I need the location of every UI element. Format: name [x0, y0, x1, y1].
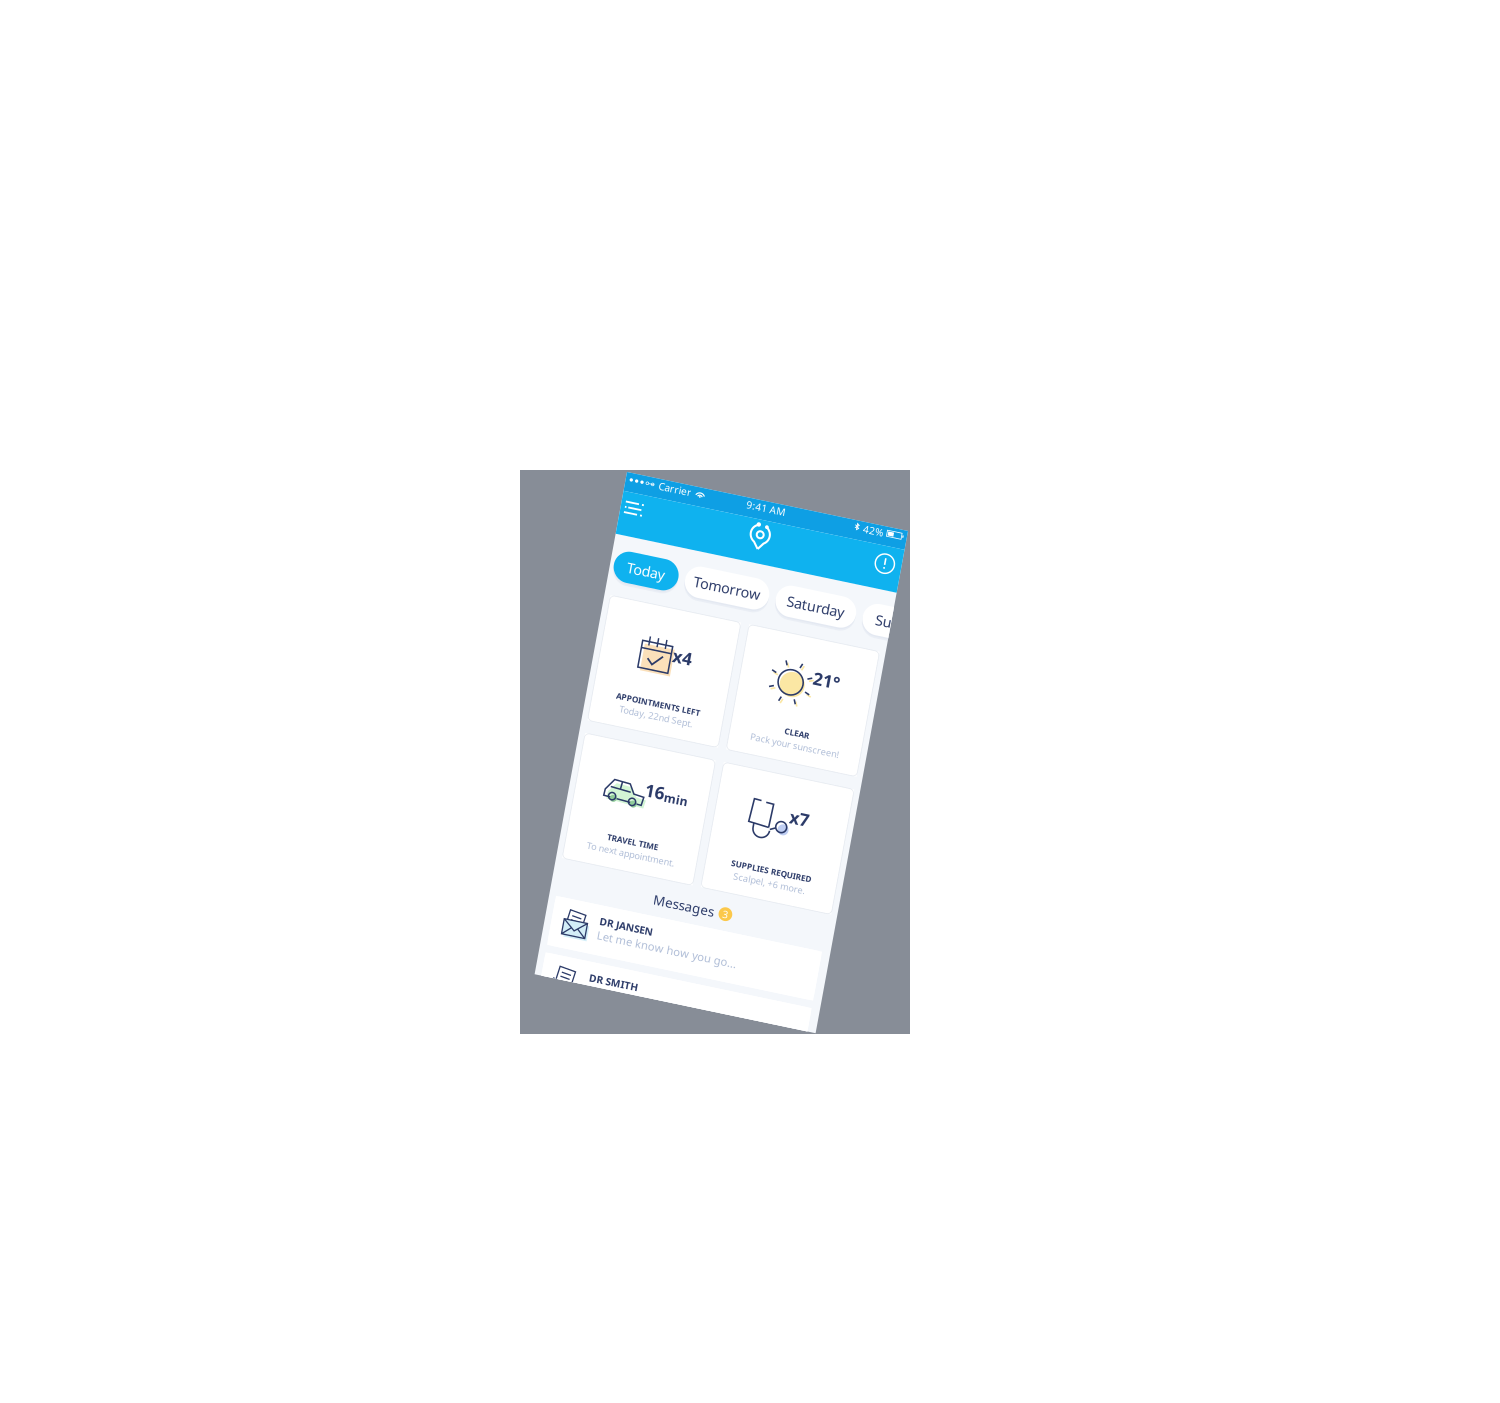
- staticText: 21°: [808, 668, 844, 698]
- staticText: x7: [810, 851, 836, 881]
- staticText: Pack your sunscreen!: [741, 767, 859, 782]
- staticText: x4: [622, 677, 648, 707]
- button[interactable]: 21°: [713, 632, 887, 798]
- staticText: Sunday: [874, 579, 939, 604]
- button[interactable]: Tomorrow: [620, 571, 732, 616]
- staticText: Tomorrow: [631, 579, 720, 604]
- staticText: Saturday: [756, 579, 833, 604]
- button[interactable]: x4: [528, 632, 702, 798]
- staticText: min: [644, 865, 675, 886]
- button[interactable]: 16: [528, 815, 702, 981]
- staticText: To next appointment.: [556, 950, 673, 965]
- staticText: SUPPLIES REQUIRED: [746, 934, 853, 949]
- staticText: 9:41 AM: [681, 470, 733, 488]
- staticText: Scalpel, +6 more.: [752, 950, 848, 965]
- button[interactable]: DR JANSEN: [529, 1031, 884, 1096]
- button[interactable]: x7: [713, 815, 887, 981]
- button[interactable]: Saturday: [741, 571, 848, 616]
- button[interactable]: Sunday: [857, 571, 956, 616]
- staticText: Messages: [655, 997, 736, 1020]
- staticText: CLEAR: [783, 751, 816, 766]
- staticText: Today, 22nd Sept.: [566, 767, 664, 782]
- staticText: 16: [618, 856, 644, 886]
- button[interactable]: Today: [525, 571, 611, 616]
- staticText: TRAVEL TIME: [581, 934, 649, 949]
- button[interactable]: Alerts: [858, 503, 888, 533]
- staticText: APPOINTMENTS LEFT: [559, 751, 671, 766]
